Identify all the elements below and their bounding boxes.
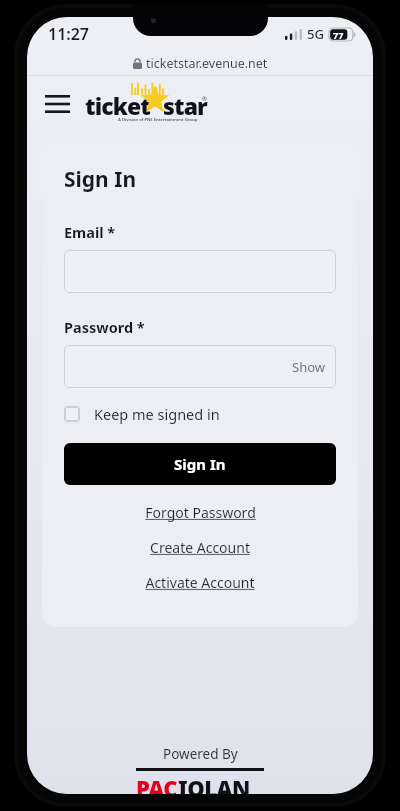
staticText: 5G [307,25,324,43]
button[interactable] [64,250,336,293]
staticText: ticket [85,90,151,121]
button[interactable]: Create Account [64,534,336,560]
button[interactable]: Keep me signed in [64,404,336,424]
staticText: Powered By [163,745,238,763]
staticText: Show [292,358,325,376]
staticText: Keep me signed in [94,404,220,424]
button[interactable]: Sign In [64,443,336,485]
staticText: Password * [64,317,145,337]
button[interactable]: Forgot Password [64,499,336,525]
staticText: Activate Account [145,573,255,592]
button[interactable]: ticketstar.evenue.net [27,51,373,75]
button[interactable]: Show [64,345,336,388]
staticText: A Division of PNS Entertainment Group [118,117,198,123]
button[interactable]: ticketstar home [85,81,207,127]
staticText: star [163,90,207,121]
staticText: Sign In [174,454,226,474]
staticText: 11:27 [48,23,90,45]
button[interactable]: Activate Account [64,569,336,595]
staticText: ticketstar.evenue.net [146,55,268,72]
staticText: ® [202,95,207,103]
staticText: 77 [333,29,344,41]
staticText: Create Account [150,538,250,557]
staticText: Sign In [64,165,137,194]
button[interactable]: Menu [39,86,75,122]
staticText: Forgot Password [145,503,256,522]
staticText: IOLAN [178,773,250,794]
staticText: Email * [64,222,116,242]
staticText: PAC [136,773,178,794]
